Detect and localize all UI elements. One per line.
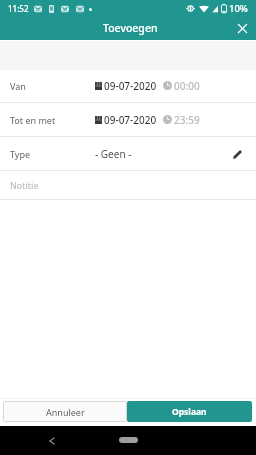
staticText: 11:52 xyxy=(8,3,29,14)
button[interactable]: Home xyxy=(119,437,138,443)
staticText: 23:59 xyxy=(174,113,200,127)
staticText: Annuleer xyxy=(46,406,85,418)
staticText: Van xyxy=(10,80,95,92)
button[interactable]: 09-07-2020 xyxy=(95,69,157,102)
staticText: 00:00 xyxy=(174,79,200,93)
button[interactable]: Notitie xyxy=(0,171,256,199)
button[interactable]: 09-07-2020 xyxy=(95,103,157,136)
button[interactable]: 00:00 xyxy=(163,69,200,102)
staticText: Toevoegen xyxy=(103,21,158,35)
button[interactable]: Type xyxy=(0,137,256,170)
staticText: 09-07-2020 xyxy=(104,79,157,93)
button[interactable]: Sluiten xyxy=(231,17,253,39)
staticText: - Geen - xyxy=(95,147,132,161)
button[interactable]: Terug xyxy=(42,431,62,451)
staticText: Tot en met xyxy=(10,114,95,126)
staticText: Type xyxy=(10,148,95,160)
button[interactable]: Opslaan xyxy=(127,401,252,422)
staticText: 10% xyxy=(229,2,248,15)
staticText: Opslaan xyxy=(172,406,207,418)
staticText: 09-07-2020 xyxy=(104,113,157,127)
button[interactable]: Annuleer xyxy=(3,401,127,422)
button[interactable]: Bewerken xyxy=(222,139,252,169)
button[interactable]: 23:59 xyxy=(163,103,200,136)
staticText: Notitie xyxy=(10,179,39,191)
